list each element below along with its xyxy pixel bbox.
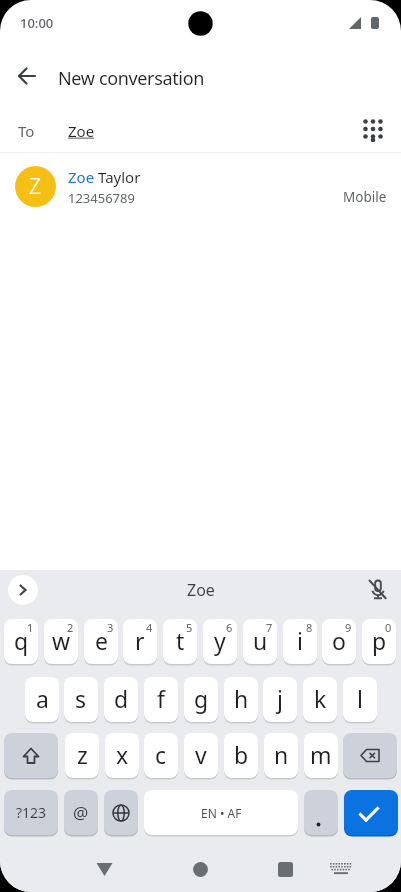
button[interactable]: o (322, 619, 356, 664)
button[interactable]: @ (64, 790, 98, 835)
button[interactable]: g (184, 677, 218, 722)
button[interactable] (104, 790, 138, 835)
staticText: 3 (107, 620, 114, 635)
button[interactable] (184, 853, 216, 885)
staticText: 5 (186, 620, 193, 635)
staticText: r (135, 625, 145, 656)
button[interactable]: ?123 (4, 790, 58, 835)
staticText: 123456789 (68, 189, 135, 207)
button[interactable] (13, 63, 41, 91)
staticText: z (77, 739, 88, 770)
button[interactable]: m (304, 733, 338, 778)
button[interactable]: f (144, 677, 178, 722)
button[interactable]: Zoe (187, 579, 215, 601)
button[interactable]: s (64, 677, 98, 722)
staticText: Zoe (68, 121, 95, 141)
staticText: 1 (27, 620, 34, 635)
staticText: t (176, 625, 185, 656)
button[interactable]: h (224, 677, 258, 722)
button[interactable]: t (163, 619, 197, 664)
staticText: EN • AF (201, 805, 242, 821)
staticText: b (234, 739, 249, 770)
button[interactable]: x (105, 733, 139, 778)
staticText: New conversation (58, 66, 204, 91)
button[interactable] (88, 853, 120, 885)
staticText: 9 (345, 620, 352, 635)
button[interactable]: q (4, 619, 38, 664)
button[interactable] (304, 790, 338, 835)
button[interactable]: i (283, 619, 317, 664)
button[interactable]: l (343, 677, 377, 722)
staticText: Z (29, 172, 42, 201)
staticText: w (52, 625, 71, 656)
button[interactable] (344, 790, 398, 835)
button[interactable] (325, 855, 357, 883)
button[interactable]: r (123, 619, 157, 664)
staticText: e (95, 625, 108, 656)
button[interactable] (343, 733, 397, 778)
button[interactable] (4, 733, 58, 778)
button[interactable] (361, 118, 385, 142)
button[interactable]: d (104, 677, 138, 722)
staticText: f (157, 683, 165, 714)
button[interactable]: u (243, 619, 277, 664)
staticText: y (214, 625, 226, 656)
button[interactable] (367, 579, 389, 601)
button[interactable]: c (144, 733, 178, 778)
button[interactable]: k (303, 677, 337, 722)
staticText: m (310, 739, 332, 770)
staticText: a (36, 683, 49, 714)
staticText: s (75, 683, 87, 714)
staticText: j (277, 683, 283, 714)
staticText: l (357, 683, 363, 714)
button[interactable]: p (362, 619, 396, 664)
staticText: 7 (266, 620, 273, 635)
button[interactable]: a (25, 677, 59, 722)
button[interactable] (269, 853, 301, 885)
button[interactable]: e (84, 619, 118, 664)
button[interactable]: w (44, 619, 78, 664)
staticText: Zoe Taylor (68, 167, 141, 187)
button[interactable]: j (263, 677, 297, 722)
staticText: 8 (306, 620, 313, 635)
button[interactable]: z (65, 733, 99, 778)
staticText: 6 (226, 620, 233, 635)
button[interactable]: Z (0, 163, 401, 211)
staticText: @ (73, 801, 89, 824)
staticText: n (274, 739, 289, 770)
staticText: ?123 (16, 803, 47, 822)
button[interactable]: n (264, 733, 298, 778)
button[interactable]: b (224, 733, 258, 778)
button[interactable] (8, 575, 38, 605)
staticText: p (372, 625, 387, 656)
staticText: d (114, 683, 129, 714)
staticText: g (194, 683, 209, 714)
button[interactable]: To (0, 108, 401, 152)
staticText: o (332, 625, 346, 656)
button[interactable]: y (203, 619, 237, 664)
staticText: v (195, 739, 207, 770)
staticText: h (234, 683, 249, 714)
staticText: k (314, 683, 327, 714)
staticText: 4 (146, 620, 153, 635)
staticText: 10:00 (20, 14, 54, 32)
staticText: x (116, 739, 129, 770)
staticText: i (297, 625, 303, 656)
staticText: q (14, 625, 29, 656)
staticText: 2 (67, 620, 74, 635)
staticText: c (155, 739, 167, 770)
staticText: u (253, 625, 268, 656)
button[interactable]: v (184, 733, 218, 778)
staticText: 0 (385, 620, 392, 635)
button[interactable]: EN • AF (144, 790, 298, 835)
staticText: Mobile (343, 188, 387, 206)
staticText: To (18, 121, 35, 141)
